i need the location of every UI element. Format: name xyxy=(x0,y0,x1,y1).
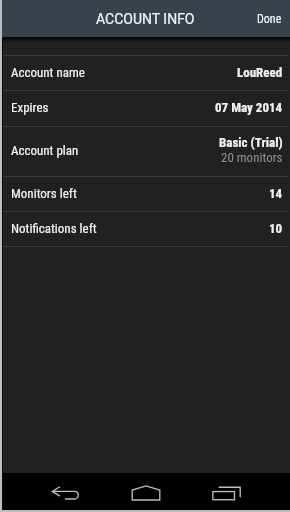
staticText: Done xyxy=(257,12,282,26)
button[interactable]: Monitors left xyxy=(0,177,290,211)
staticText: 20 monitors xyxy=(221,150,283,165)
staticText: 07 May 2014 xyxy=(215,100,283,115)
button[interactable]: Account plan xyxy=(0,127,290,176)
button[interactable]: Home xyxy=(114,473,178,512)
button[interactable]: Notifications left xyxy=(0,212,290,246)
button[interactable]: Back xyxy=(33,473,97,512)
button[interactable]: Recent apps xyxy=(195,473,259,512)
staticText: 10 xyxy=(269,221,283,236)
staticText: 14 xyxy=(269,186,283,201)
staticText: Notifications left xyxy=(11,221,97,236)
staticText: Basic (Trial) xyxy=(219,135,283,150)
staticText: Monitors left xyxy=(11,186,77,201)
staticText: LouReed xyxy=(237,65,283,80)
staticText: Account plan xyxy=(11,143,79,158)
staticText: ACCOUNT INFO xyxy=(96,11,195,27)
staticText: Expires xyxy=(11,100,49,115)
button[interactable]: Expires xyxy=(0,91,290,126)
staticText: Account name xyxy=(11,65,85,80)
button[interactable]: Done xyxy=(249,0,290,37)
button[interactable]: Account name xyxy=(0,56,290,91)
